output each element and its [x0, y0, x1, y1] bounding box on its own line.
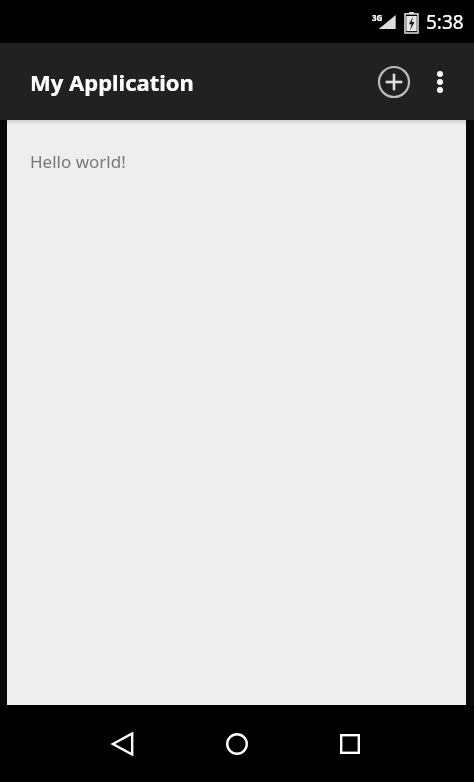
- staticText: 5:38: [426, 9, 464, 35]
- staticText: Hello world!: [30, 150, 126, 173]
- staticText: My Application: [30, 67, 194, 97]
- staticText: 3G: [372, 12, 383, 23]
- button[interactable]: More options: [418, 58, 462, 106]
- button[interactable]: Add: [370, 58, 418, 106]
- button[interactable]: Recent apps: [326, 720, 374, 768]
- button[interactable]: Home: [213, 720, 261, 768]
- button[interactable]: Back: [98, 720, 146, 768]
